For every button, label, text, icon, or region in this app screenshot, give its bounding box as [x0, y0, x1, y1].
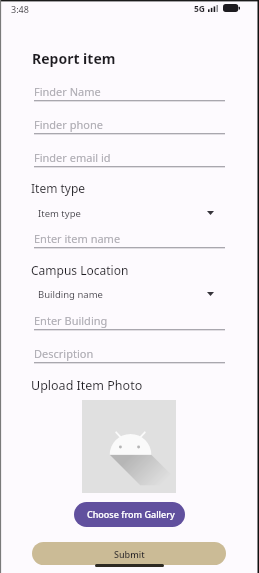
button[interactable]: Item type [34, 204, 225, 222]
button[interactable]: Finder email id [34, 146, 225, 168]
staticText: Finder Name [34, 84, 101, 99]
button[interactable]: Building name [34, 285, 225, 303]
staticText: 5G [194, 3, 206, 15]
staticText: Description [34, 346, 94, 361]
staticText: Item type [31, 180, 86, 196]
button[interactable]: Choose from Gallery [74, 502, 185, 527]
button[interactable]: Enter item name [34, 227, 225, 249]
staticText: Building name [38, 288, 103, 301]
button[interactable]: Submit [32, 542, 226, 565]
button[interactable]: Description [34, 342, 225, 364]
staticText: Report item [32, 49, 116, 68]
staticText: Submit [114, 548, 145, 560]
button[interactable]: Enter Building [34, 309, 225, 331]
button[interactable]: Finder Name [34, 80, 225, 102]
staticText: 3:48 [11, 3, 29, 15]
button[interactable]: Item photo [82, 400, 176, 493]
button[interactable]: Finder phone [34, 113, 225, 135]
staticText: Finder email id [34, 150, 111, 165]
staticText: Item type [38, 207, 81, 220]
staticText: Campus Location [31, 262, 129, 278]
staticText: Finder phone [34, 117, 103, 132]
staticText: Enter Building [34, 313, 108, 328]
staticText: Upload Item Photo [31, 377, 143, 394]
staticText: Enter item name [34, 231, 121, 246]
staticText: Choose from Gallery [87, 508, 175, 520]
